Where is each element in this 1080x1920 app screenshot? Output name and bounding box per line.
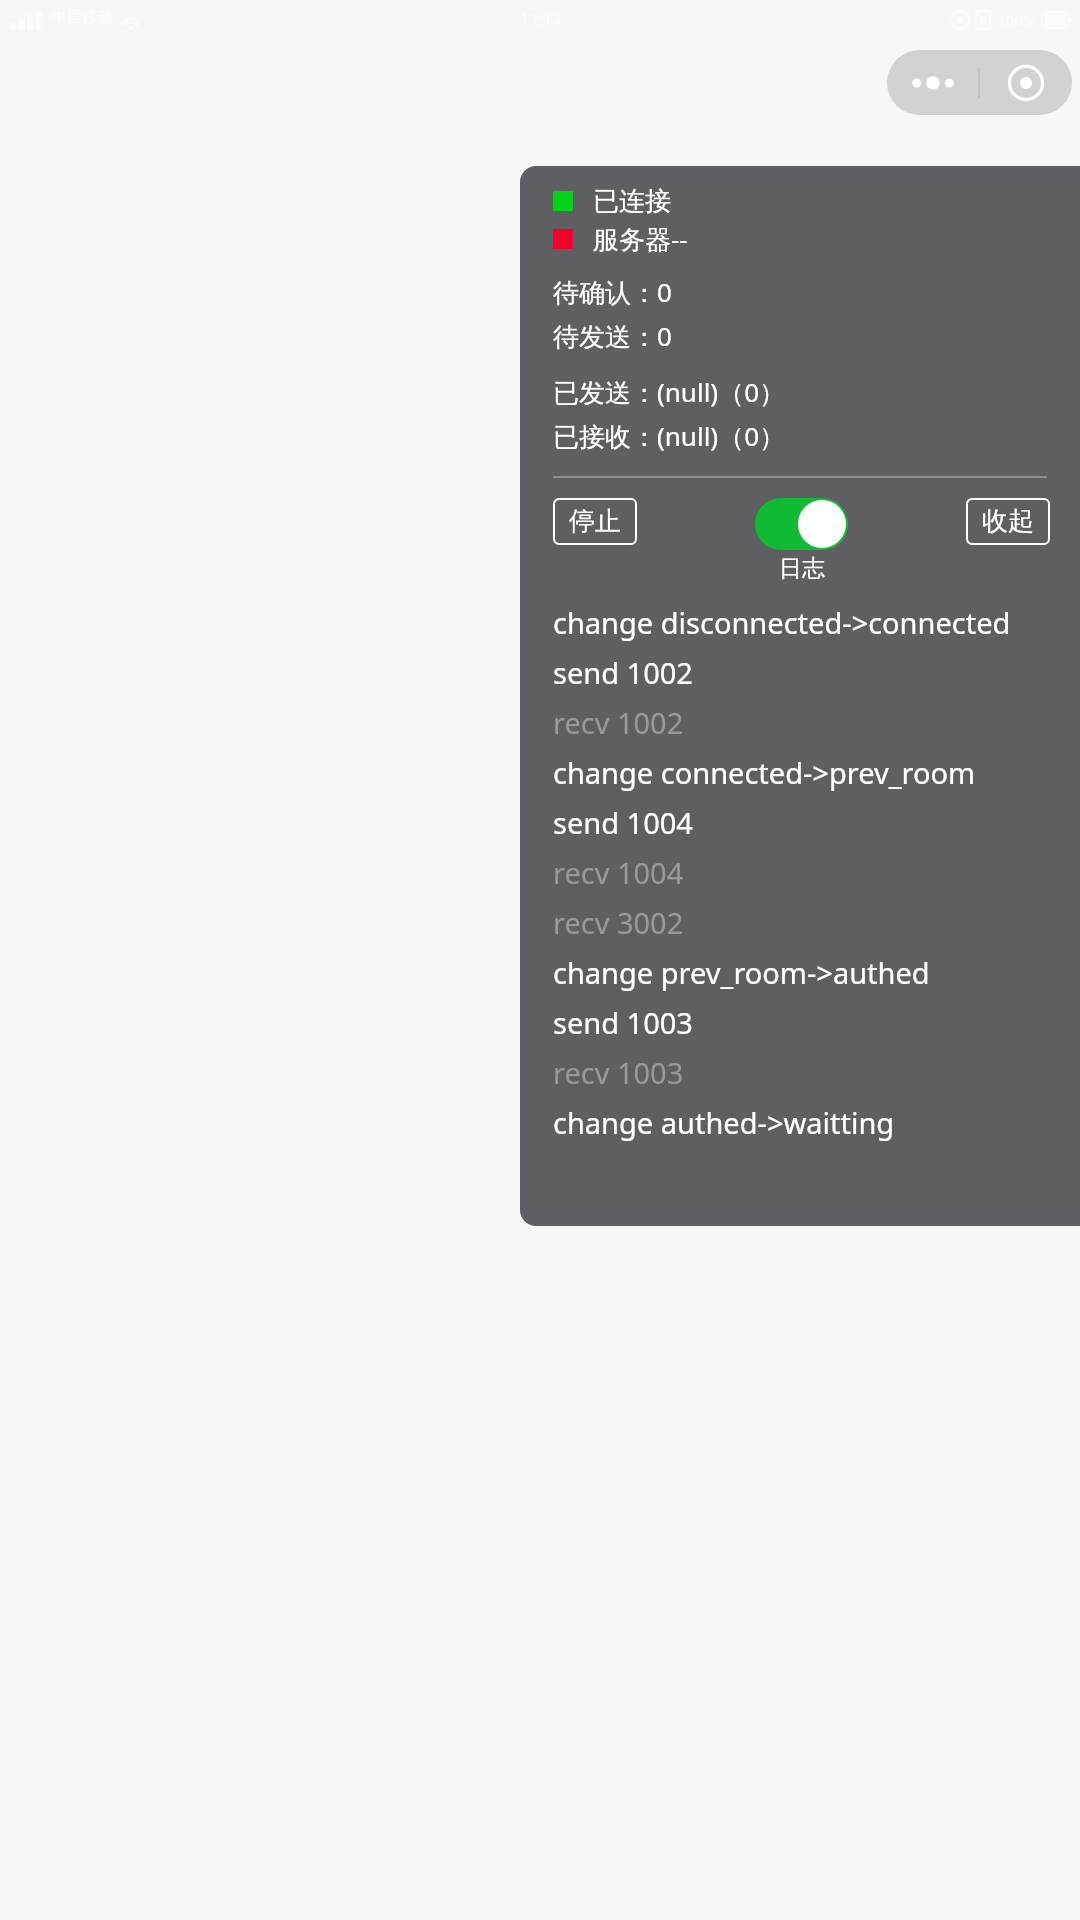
button[interactable]: 收起 — [966, 498, 1050, 545]
staticText: send 1002 — [553, 653, 693, 692]
staticText: 收起 — [982, 505, 1034, 538]
button[interactable]: More — [887, 50, 978, 115]
staticText: send 1004 — [553, 803, 693, 842]
staticText: 服务器-- — [593, 221, 688, 257]
staticText: 已接收：(null)（0） — [553, 418, 786, 454]
staticText: change prev_room->authed — [553, 953, 930, 992]
staticText: 待发送：0 — [553, 318, 672, 354]
button[interactable]: Close — [980, 50, 1072, 115]
staticText: change authed->waitting — [553, 1103, 895, 1142]
staticText: recv 1004 — [553, 853, 684, 892]
staticText: 停止 — [569, 505, 621, 538]
staticText: change connected->prev_room — [553, 753, 976, 792]
staticText: 已连接 — [593, 185, 671, 218]
staticText: recv 3002 — [553, 903, 684, 942]
staticText: recv 1002 — [553, 703, 684, 742]
staticText: change disconnected->connected — [553, 603, 1011, 642]
staticText: recv 1003 — [553, 1053, 684, 1092]
staticText: send 1003 — [553, 1003, 693, 1042]
button[interactable]: Toggle log — [755, 498, 848, 550]
staticText: 待确认：0 — [553, 274, 672, 310]
staticText: 已发送：(null)（0） — [553, 374, 786, 410]
button[interactable]: 停止 — [553, 498, 637, 545]
staticText: 日志 — [779, 554, 825, 583]
